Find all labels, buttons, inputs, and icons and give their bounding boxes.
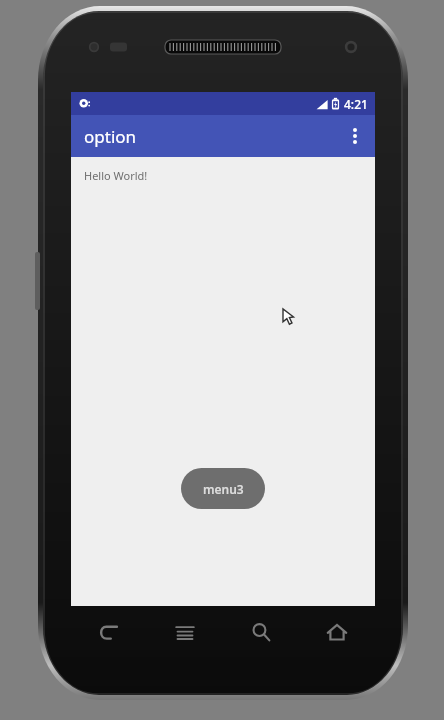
staticText: option xyxy=(84,125,137,148)
button[interactable]: menu3 xyxy=(181,468,265,509)
button[interactable]: Back xyxy=(71,610,147,654)
button[interactable]: Home xyxy=(299,610,375,654)
staticText: Hello World! xyxy=(84,168,148,183)
staticText: menu3 xyxy=(203,481,244,497)
button[interactable]: Search xyxy=(223,610,299,654)
button[interactable]: More options xyxy=(335,116,375,156)
staticText: 4:21 xyxy=(344,96,368,112)
button[interactable]: Menu xyxy=(147,610,223,654)
